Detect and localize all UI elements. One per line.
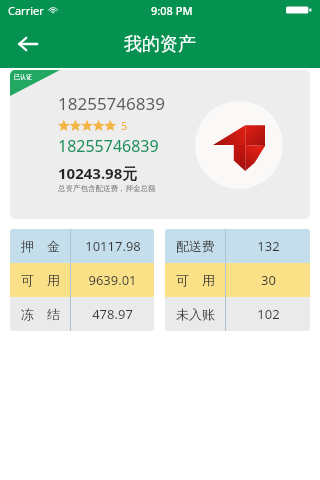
staticText: 102 (257, 305, 280, 323)
staticText: 9:08 PM (151, 3, 193, 18)
staticText: 18255746839 (58, 135, 159, 157)
staticText: 9639.01 (88, 271, 137, 289)
staticText: 已认证 (14, 73, 32, 81)
button[interactable]: 押 金 (10, 229, 154, 263)
staticText: 478.97 (92, 305, 133, 323)
staticText: 可 用 (176, 271, 215, 289)
staticText: 配送费 (176, 238, 215, 254)
staticText: 5 (121, 118, 128, 133)
staticText: 押 金 (21, 237, 60, 255)
staticText: 我的资产 (124, 33, 196, 56)
staticText: 10243.98元 (58, 163, 138, 183)
staticText: 冻 结 (21, 305, 60, 323)
button[interactable]: 已认证 (10, 70, 310, 219)
staticText: 总资产包含配送费，押金总额 (58, 184, 156, 193)
button[interactable]: 冻 结 (10, 297, 154, 331)
staticText: 可 用 (21, 271, 60, 289)
button[interactable]: 可 用 (10, 263, 154, 297)
staticText: 30 (261, 271, 276, 289)
staticText: 10117.98 (85, 237, 141, 255)
button[interactable]: 可 用 (165, 263, 310, 297)
staticText: 132 (257, 237, 280, 255)
button[interactable]: 未入账 (165, 297, 310, 331)
button[interactable]: Back (6, 22, 50, 66)
staticText: Carrier (8, 3, 44, 18)
staticText: 18255746839 (58, 92, 165, 115)
staticText: 未入账 (176, 306, 215, 322)
button[interactable]: 配送费 (165, 229, 310, 263)
